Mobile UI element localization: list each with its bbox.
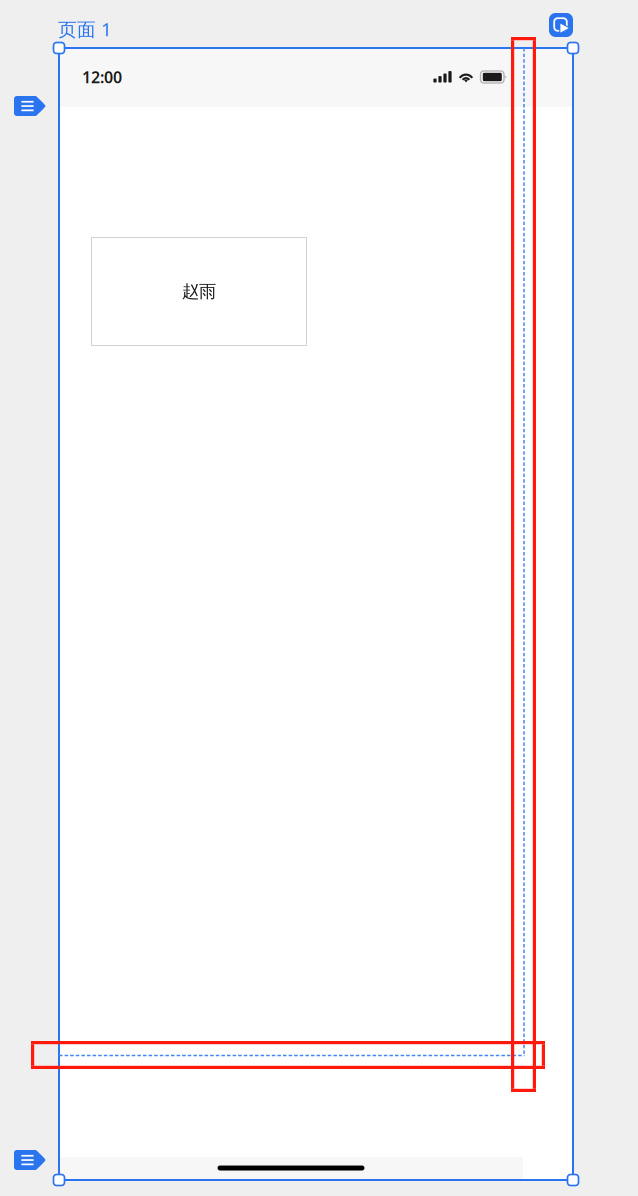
button[interactable]: Bottom anchor notes [14, 1150, 46, 1170]
staticText: 赵雨 [182, 281, 216, 302]
button[interactable]: 页面 1 [58, 19, 128, 39]
button[interactable]: Preview prototype [549, 13, 573, 37]
staticText: 12:00 [82, 66, 122, 88]
button[interactable]: Top anchor notes [14, 96, 46, 116]
staticText: 页面 1 [58, 17, 112, 41]
